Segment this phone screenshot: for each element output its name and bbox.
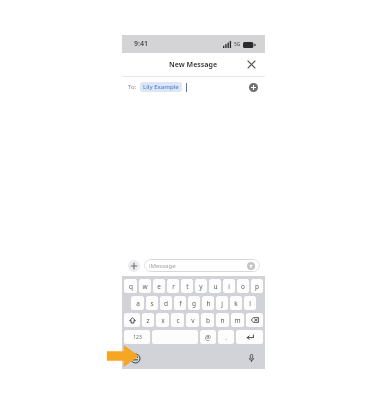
staticText: p	[255, 282, 259, 291]
button[interactable]: d	[160, 296, 172, 310]
staticText: z	[146, 316, 150, 325]
button[interactable]: r	[167, 279, 179, 293]
button[interactable]: w	[139, 279, 151, 293]
staticText: q	[129, 282, 133, 291]
button[interactable]: e	[153, 279, 165, 293]
staticText: m	[234, 316, 241, 325]
button[interactable]: z	[142, 313, 154, 327]
staticText: j	[221, 299, 223, 308]
staticText: v	[191, 316, 195, 325]
button[interactable]: x	[156, 313, 169, 327]
staticText: n	[220, 316, 225, 325]
staticText: .	[225, 333, 227, 342]
button[interactable]: n	[216, 313, 229, 327]
other: Pointer arrow	[107, 345, 139, 367]
staticText: New Message	[169, 60, 218, 70]
staticText: r	[172, 282, 175, 291]
button[interactable]: g	[188, 296, 200, 310]
button[interactable]: i	[223, 279, 235, 293]
button[interactable]: Add contact	[248, 82, 259, 93]
button[interactable]: v	[186, 313, 199, 327]
staticText: @	[205, 333, 211, 342]
button[interactable]: @	[200, 330, 216, 344]
button[interactable]: p	[251, 279, 263, 293]
staticText: h	[206, 299, 211, 308]
button[interactable]: a	[131, 296, 144, 310]
button[interactable]: o	[237, 279, 249, 293]
button[interactable]: 123	[124, 330, 150, 344]
staticText: s	[150, 299, 154, 308]
staticText: g	[192, 299, 196, 308]
button[interactable]: l	[244, 296, 256, 310]
button[interactable]: c	[171, 313, 184, 327]
button[interactable]: s	[146, 296, 158, 310]
button[interactable]: Shift	[124, 313, 140, 327]
button[interactable]: Add attachment	[127, 259, 140, 272]
button[interactable]: k	[230, 296, 242, 310]
button[interactable]: Backspace	[246, 313, 263, 327]
staticText: d	[164, 299, 168, 308]
staticText: x	[161, 316, 165, 325]
staticText: 123	[133, 334, 142, 341]
button[interactable]: Lily Example	[143, 83, 179, 91]
button[interactable]: b	[201, 313, 214, 327]
staticText: l	[249, 299, 251, 308]
button[interactable]: u	[209, 279, 221, 293]
button[interactable]: f	[174, 296, 186, 310]
button[interactable]: h	[202, 296, 214, 310]
staticText: Lily Example	[143, 83, 179, 91]
staticText: c	[176, 316, 180, 325]
staticText: w	[142, 282, 148, 291]
staticText: iMessage	[149, 262, 176, 270]
staticText: o	[241, 282, 245, 291]
button[interactable]: Close	[245, 58, 258, 71]
button[interactable]: y	[195, 279, 207, 293]
button[interactable]: Emoji	[128, 351, 142, 365]
button[interactable]: m	[231, 313, 244, 327]
staticText: u	[213, 282, 218, 291]
staticText: 9:41	[134, 39, 148, 49]
button[interactable]: .	[218, 330, 234, 344]
staticText: To:	[128, 83, 137, 91]
button[interactable]: j	[216, 296, 228, 310]
staticText: t	[186, 282, 189, 291]
staticText: e	[157, 282, 161, 291]
button[interactable]: Return	[236, 330, 263, 344]
staticText: 5G	[234, 41, 241, 48]
button[interactable]: iMessage	[144, 259, 260, 272]
button[interactable]: Dictation	[244, 351, 258, 365]
staticText: y	[199, 282, 203, 291]
staticText: i	[228, 282, 230, 291]
button[interactable]: t	[181, 279, 193, 293]
staticText: f	[179, 299, 182, 308]
staticText: b	[206, 316, 210, 325]
staticText: a	[136, 299, 140, 308]
button[interactable]: q	[124, 279, 137, 293]
other: Send	[247, 262, 255, 270]
staticText: k	[234, 299, 238, 308]
